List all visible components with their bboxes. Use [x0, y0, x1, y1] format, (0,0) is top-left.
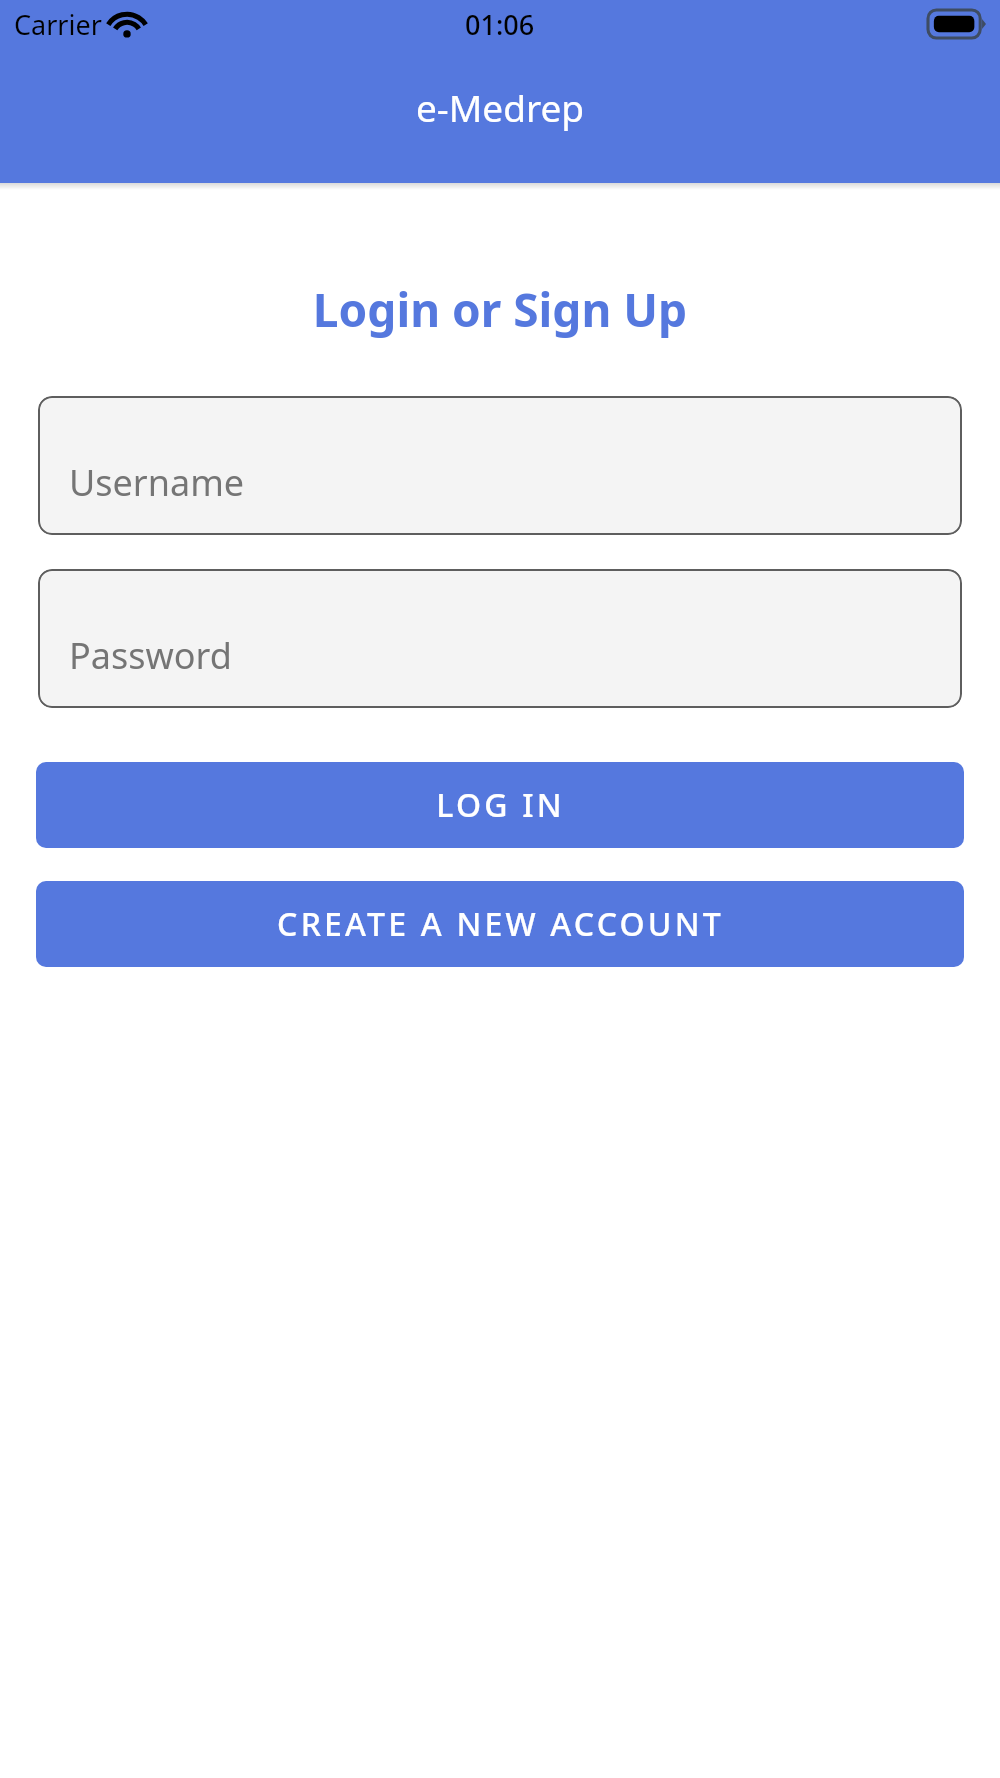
staticText: Password — [69, 631, 232, 680]
button[interactable]: LOG IN — [36, 762, 964, 848]
staticText: e-Medrep — [416, 82, 585, 132]
staticText: CREATE A NEW ACCOUNT — [277, 902, 724, 946]
button[interactable]: Password — [38, 569, 962, 708]
staticText: Login or Sign Up — [0, 278, 1000, 341]
staticText: LOG IN — [436, 783, 565, 827]
button[interactable]: Username — [38, 396, 962, 535]
staticText: Carrier — [14, 6, 102, 43]
staticText: Username — [69, 458, 245, 507]
other: Battery full — [928, 10, 986, 38]
button[interactable]: CREATE A NEW ACCOUNT — [36, 881, 964, 967]
staticText: 01:06 — [465, 6, 535, 43]
